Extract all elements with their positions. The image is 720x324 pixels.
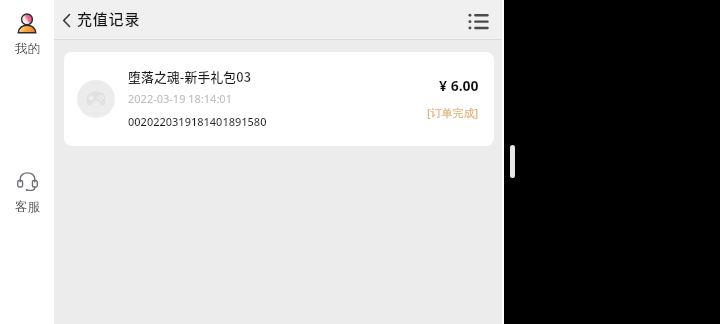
staticText: [订单完成]	[427, 105, 479, 120]
staticText: 0020220319181401891580	[128, 114, 267, 129]
staticText: 客服	[15, 199, 40, 215]
button[interactable]: Order list	[464, 7, 492, 35]
staticText: 我的	[15, 41, 40, 57]
staticText: 充值记录	[77, 8, 141, 30]
staticText: 2022-03-19 18:14:01	[128, 91, 232, 106]
button[interactable]: 客服	[0, 170, 54, 215]
button[interactable]: 我的	[0, 14, 54, 57]
button[interactable]: Back	[53, 7, 79, 33]
staticText: 堕落之魂-新手礼包03	[128, 67, 252, 86]
button[interactable]: 堕落之魂-新手礼包03	[64, 52, 494, 146]
staticText: ¥ 6.00	[439, 76, 479, 95]
